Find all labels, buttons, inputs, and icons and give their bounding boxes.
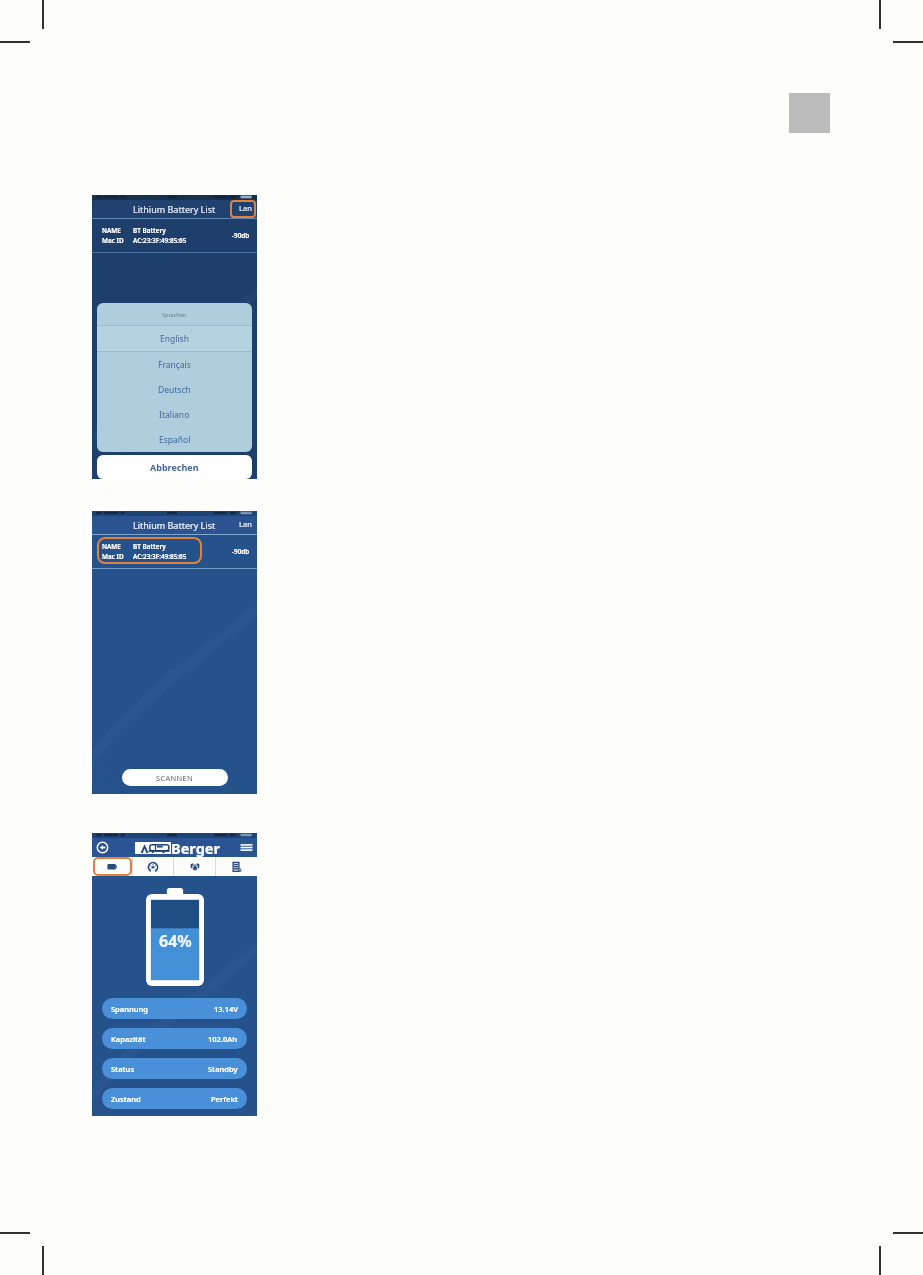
staticText: NAME [102,226,133,235]
staticText: SCANNEN [156,773,194,783]
button[interactable]: Abbrechen [97,455,252,479]
button[interactable]: SCANNEN [122,769,228,786]
staticText: Français [158,359,191,371]
button[interactable]: Gauge [133,857,173,876]
staticText: Italiano [159,409,190,421]
staticText: AC:23:3F:49:85:65 [133,552,187,561]
staticText: Lan [239,519,252,529]
staticText: 64% [159,930,192,952]
staticText: Sprachen [162,311,187,318]
staticText: BT Battery [133,226,166,235]
staticText: NAME [102,542,133,551]
button[interactable]: Zustand [102,1088,247,1109]
button[interactable]: NAME [92,219,257,253]
button[interactable]: Kapazität [102,1028,247,1049]
staticText: Español [159,434,191,446]
button[interactable]: Lan [239,519,252,529]
button[interactable]: Spannung [102,998,247,1019]
button[interactable]: Status [102,1058,247,1079]
button[interactable]: English [97,326,252,351]
staticText: 13.14V [214,1004,238,1014]
staticText: Perfekt [211,1094,238,1104]
button[interactable]: Deutsch [97,377,252,402]
staticText: Standby [208,1064,238,1074]
button[interactable]: Alarm [174,857,215,876]
staticText: Mac ID [102,236,133,245]
staticText: Lithium Battery List [133,519,216,531]
staticText: -90db [232,547,250,556]
button[interactable]: Español [97,427,252,452]
staticText: 102.0Ah [208,1034,238,1044]
staticText: AC:23:3F:49:85:65 [133,236,187,245]
button[interactable]: Italiano [97,402,252,427]
staticText: Kapazität [111,1034,146,1044]
button[interactable]: Français [97,352,252,377]
staticText: Zustand [111,1094,141,1104]
staticText: Abbrechen [150,461,199,473]
button[interactable]: Report [216,857,257,876]
button[interactable]: Menu [240,841,253,854]
staticText: Lithium Battery List [133,203,216,215]
staticText: Status [111,1064,135,1074]
staticText: -90db [232,231,250,240]
button[interactable]: Back [96,841,109,854]
button[interactable]: Lan [239,203,252,213]
staticText: Berger [171,838,220,857]
staticText: Deutsch [158,384,191,396]
staticText: BT Battery [133,542,166,551]
staticText: Lan [239,203,252,213]
button[interactable]: NAME [92,535,257,569]
staticText: English [160,333,189,345]
button[interactable]: Battery [92,857,132,876]
staticText: Spannung [111,1004,149,1014]
staticText: Mac ID [102,552,133,561]
